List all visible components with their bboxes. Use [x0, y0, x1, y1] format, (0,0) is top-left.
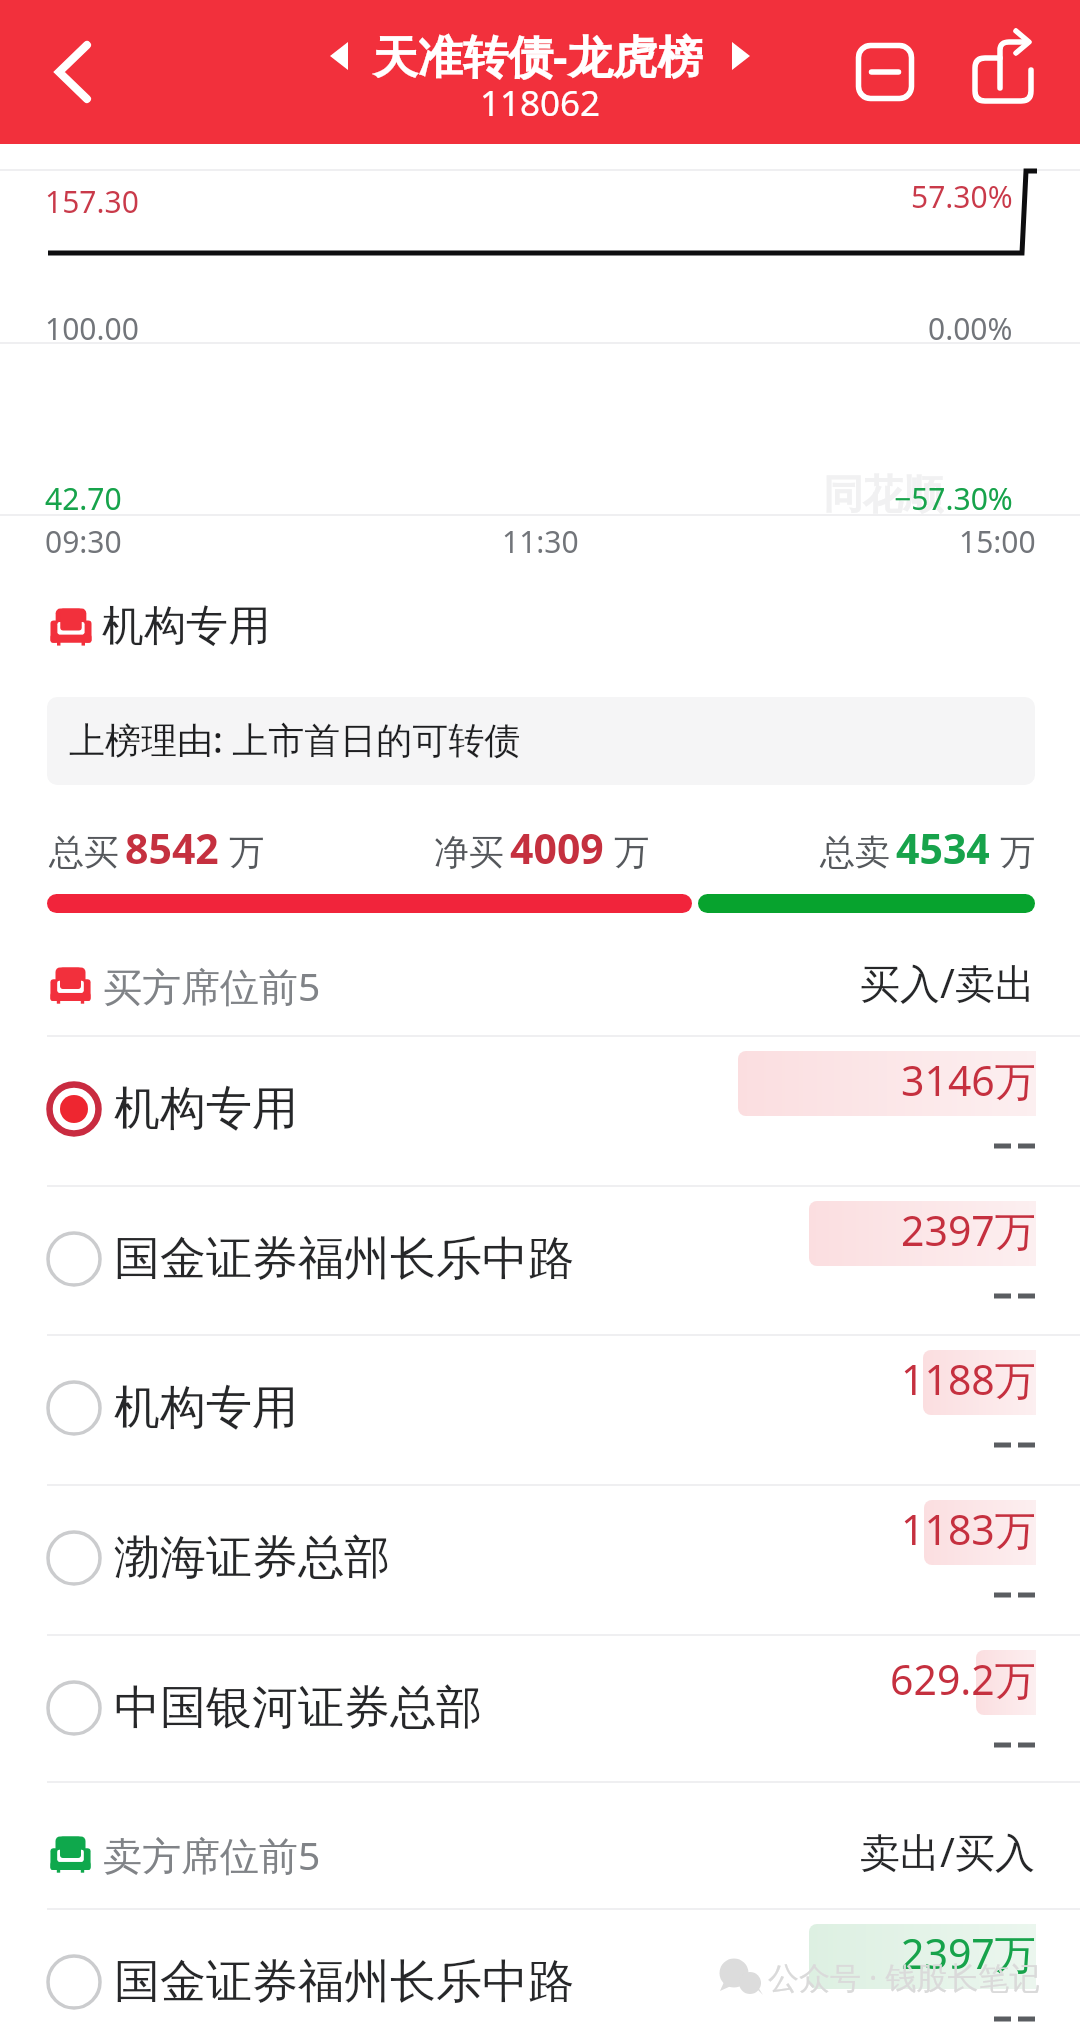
staticText: 买方席位前5 [103, 959, 321, 1012]
staticText: 118062 [480, 79, 601, 127]
button[interactable]: Remove from watchlist [845, 32, 925, 112]
staticText: 国金证券福州长乐中路 [114, 1953, 574, 2011]
button[interactable]: 国金证券福州长乐中路 [0, 1185, 1080, 1334]
staticText: 09:30 [45, 521, 122, 562]
staticText: 万 [1000, 830, 1035, 874]
staticText: −57.30% [894, 478, 1013, 519]
staticText: 机构专用 [102, 600, 270, 653]
button[interactable]: 上榜理由: 上市首日的可转债 [47, 697, 1035, 785]
staticText: 总卖 [820, 830, 890, 874]
staticText: 57.30% [911, 176, 1013, 217]
staticText: 11:30 [502, 521, 579, 562]
button[interactable]: 渤海证券总部 [0, 1484, 1080, 1634]
staticText: 1183万 [901, 1501, 1036, 1557]
staticText: 157.30 [45, 181, 139, 222]
staticText: 万 [229, 830, 264, 874]
staticText: 1188万 [901, 1351, 1036, 1407]
staticText: 总买 [49, 830, 119, 874]
staticText: 629.2万 [890, 1651, 1036, 1707]
staticText: 国金证券福州长乐中路 [114, 1230, 574, 1288]
staticText: 中国银河证券总部 [114, 1679, 482, 1737]
button[interactable]: Back [32, 34, 108, 110]
staticText: 卖方席位前5 [103, 1828, 321, 1881]
staticText: 万 [614, 830, 649, 874]
button[interactable]: 国金证券福州长乐中路 [0, 1908, 1080, 2023]
staticText: 机构专用 [114, 1379, 298, 1437]
button[interactable]: 中国银河证券总部 [0, 1634, 1080, 1781]
staticText: 3146万 [901, 1052, 1036, 1108]
staticText: 上榜理由: 上市首日的可转债 [69, 715, 521, 764]
staticText: 100.00 [45, 308, 139, 349]
button[interactable]: 机构专用 [0, 1035, 1080, 1185]
button[interactable]: Share [963, 32, 1043, 112]
staticText: 2397万 [901, 1202, 1036, 1258]
staticText: 天准转债-龙虎榜 [373, 25, 703, 86]
staticText: 4009 [510, 820, 604, 876]
staticText: 15:00 [959, 521, 1036, 562]
staticText: 净买 [434, 830, 504, 874]
staticText: 渤海证券总部 [114, 1529, 390, 1587]
staticText: 买入/卖出 [860, 955, 1035, 1010]
button[interactable]: 机构专用 [0, 1334, 1080, 1484]
staticText: 0.00% [928, 308, 1013, 349]
staticText: 4534 [896, 820, 990, 876]
staticText: 8542 [125, 820, 219, 876]
staticText: 2397万 [901, 1925, 1036, 1981]
staticText: 同花顺 [823, 469, 943, 519]
staticText: 公众号 · 钱股长笔记 [768, 1956, 1041, 1998]
staticText: 机构专用 [114, 1080, 298, 1138]
staticText: 卖出/买入 [860, 1824, 1035, 1879]
staticText: 42.70 [45, 478, 122, 519]
